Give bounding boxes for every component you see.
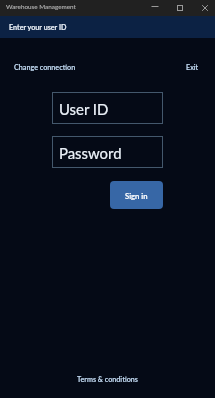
button[interactable]: Change connection [10, 60, 80, 75]
staticText: Terms & conditions [77, 375, 138, 384]
staticText: Enter your user ID [9, 23, 67, 32]
button[interactable]: User ID [52, 92, 163, 124]
button[interactable]: Minimize [142, 0, 167, 16]
button[interactable]: Password [52, 136, 163, 168]
staticText: Exit [186, 63, 199, 72]
staticText: Password [59, 144, 122, 162]
button[interactable]: Close [192, 0, 215, 16]
button[interactable]: Maximize [167, 0, 192, 16]
staticText: Warehouse Management [6, 3, 76, 11]
button[interactable]: Sign in [110, 181, 163, 209]
staticText: Change connection [14, 63, 76, 72]
staticText: User ID [59, 100, 109, 118]
button[interactable]: Exit [182, 60, 203, 75]
button[interactable]: Terms & conditions [71, 372, 144, 387]
staticText: Sign in [125, 191, 148, 200]
